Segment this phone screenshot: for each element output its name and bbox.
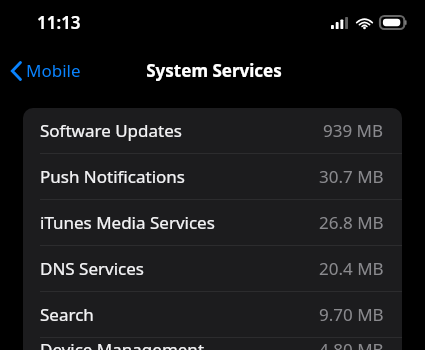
button[interactable]: Device Management [23, 338, 402, 350]
button[interactable]: Software Updates [23, 108, 402, 153]
button[interactable]: iTunes Media Services [23, 200, 402, 245]
staticText: iTunes Media Services [40, 211, 215, 234]
staticText: 20.4 MB [319, 257, 384, 280]
staticText: DNS Services [40, 257, 144, 280]
staticText: 26.8 MB [319, 211, 384, 234]
staticText: Software Updates [40, 119, 182, 142]
button[interactable]: Search [23, 292, 402, 337]
button[interactable]: DNS Services [23, 246, 402, 291]
staticText: Device Management [40, 338, 205, 350]
button[interactable]: Push Notifications [23, 154, 402, 199]
staticText: System Services [146, 59, 282, 82]
staticText: Search [40, 303, 94, 326]
staticText: 9.70 MB [319, 303, 384, 326]
button[interactable]: Back [0, 53, 91, 88]
staticText: Push Notifications [40, 165, 185, 188]
staticText: 11:13 [37, 11, 81, 34]
staticText: 4.80 MB [319, 338, 384, 350]
other: Back [11, 61, 22, 81]
staticText: Mobile [26, 59, 81, 82]
staticText: 30.7 MB [319, 165, 384, 188]
staticText: 939 MB [323, 119, 384, 142]
